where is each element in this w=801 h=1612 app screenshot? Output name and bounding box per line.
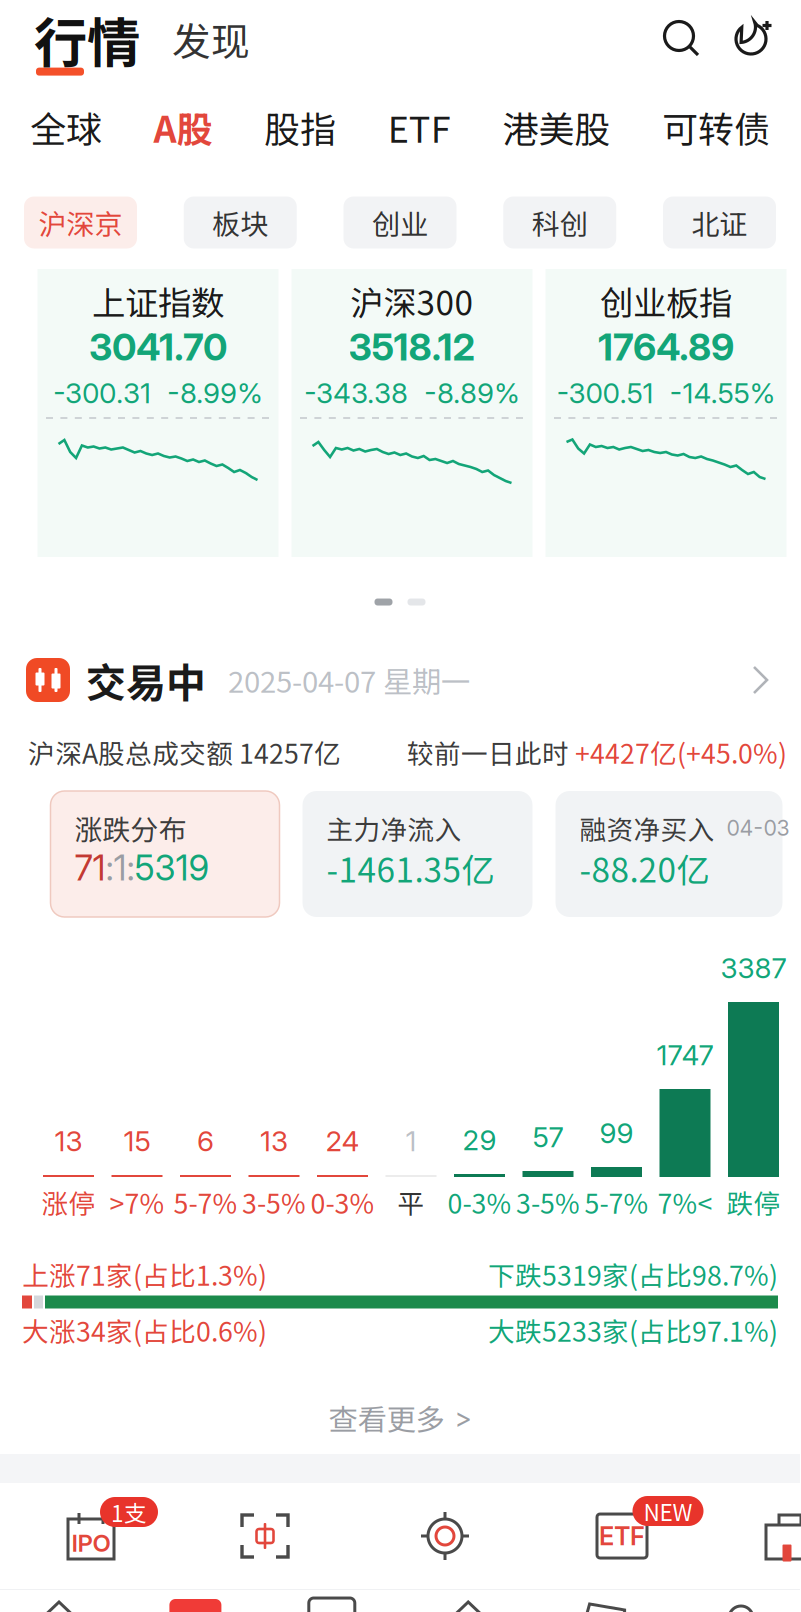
button[interactable]: ETF (562, 1497, 682, 1575)
staticText: -300.51 (556, 376, 653, 410)
staticText: -14.55% (669, 376, 775, 410)
staticText: 科创 (532, 202, 588, 243)
button[interactable]: 板块 (184, 196, 297, 248)
staticText: 创业板指 (600, 277, 732, 325)
staticText: >7% (109, 1183, 164, 1221)
button[interactable]: 首页 (14, 1598, 104, 1612)
button[interactable]: 我的 (696, 1598, 786, 1612)
staticText: 0-3% (447, 1183, 511, 1221)
staticText: 7%< (657, 1183, 712, 1221)
staticText: 行情 (34, 0, 140, 78)
staticText: 港美股 (502, 101, 610, 153)
staticText: 13 (260, 1124, 288, 1158)
staticText: > (454, 1402, 471, 1434)
button[interactable]: 全球 (30, 101, 102, 153)
staticText: 99 (599, 1116, 633, 1150)
button[interactable]: 交易 (287, 1598, 377, 1612)
staticText: -1461.35亿 (326, 844, 494, 892)
staticText: 2025-04-07 星期一 (228, 659, 470, 701)
button[interactable]: 交易中 (0, 647, 800, 713)
button[interactable]: 创业 (343, 196, 456, 248)
button[interactable]: 可转债 (662, 101, 770, 153)
staticText: 查看更多 (328, 1396, 444, 1439)
button[interactable]: 涨跌分布 (50, 791, 279, 917)
button[interactable]: A股 (154, 101, 213, 153)
button[interactable]: 沪深京 (24, 196, 137, 248)
staticText: : (105, 847, 113, 889)
staticText: 6 (197, 1124, 214, 1158)
staticText: 15 (123, 1124, 150, 1158)
staticText: 交易中 (86, 651, 206, 709)
staticText: 跌停 (726, 1183, 780, 1221)
staticText: 3518.12 (348, 324, 475, 370)
staticText: 1764.89 (598, 324, 734, 370)
staticText: 沪深A股总成交额 14257亿 (28, 733, 341, 771)
button[interactable]: 北证 (663, 196, 776, 248)
staticText: 北证 (691, 202, 747, 243)
staticText: 涨跌分布 (74, 808, 186, 848)
button[interactable]: ETF (388, 101, 451, 153)
button[interactable]: 资产 (560, 1598, 650, 1612)
button[interactable]: 主力净流入 (302, 791, 532, 917)
staticText: 1支 (111, 1496, 147, 1528)
staticText: 5-7% (173, 1183, 237, 1221)
button[interactable]: 行情 (150, 1598, 240, 1612)
staticText: NEW (643, 1495, 692, 1527)
staticText: 平 (397, 1183, 424, 1221)
staticText: 0-3% (310, 1183, 374, 1221)
staticText: 涨停 (41, 1183, 95, 1221)
button[interactable]: 工具箱 (730, 1497, 801, 1575)
staticText: 创业 (372, 202, 428, 243)
staticText: ETF (599, 1521, 645, 1551)
button[interactable]: 创业板指 (545, 269, 786, 557)
staticText: 3-5% (516, 1183, 580, 1221)
staticText: 上证指数 (92, 277, 224, 325)
staticText: 1 (405, 1124, 416, 1158)
staticText: : (126, 847, 134, 889)
staticText: 1 (113, 847, 126, 889)
staticText: 5319 (134, 847, 209, 889)
staticText: 下跌5319家(占比98.7%) (488, 1255, 778, 1293)
staticText: -8.89% (424, 376, 520, 410)
button[interactable]: 沪深300 (291, 269, 532, 557)
staticText: 沪深300 (350, 277, 473, 325)
staticText: 29 (462, 1123, 496, 1157)
staticText: 融资净买入 (579, 809, 714, 847)
staticText: 3387 (720, 951, 786, 985)
button[interactable]: 科创 (503, 196, 616, 248)
button[interactable]: 港美股 (502, 101, 610, 153)
button[interactable]: 盯盘 (385, 1497, 505, 1575)
staticText: ETF (388, 101, 451, 153)
button[interactable]: IPO 新股 (31, 1497, 151, 1575)
staticText: 1747 (656, 1038, 713, 1072)
staticText: 大跌5233家(占比97.1%) (488, 1311, 778, 1349)
staticText: 57 (532, 1120, 563, 1154)
staticText: 04-03 (726, 815, 789, 841)
button[interactable]: 扫一扫 (205, 1497, 325, 1575)
staticText: +4427亿(+45.0%) (575, 733, 787, 771)
staticText: 较前一日此时 (407, 733, 569, 771)
button[interactable]: 融资净买入 (555, 791, 782, 917)
staticText: -300.31 (53, 376, 151, 410)
staticText: 大涨34家(占比0.6%) (22, 1311, 267, 1349)
staticText: 3-5% (242, 1183, 306, 1221)
staticText: 13 (54, 1124, 82, 1158)
button[interactable]: 搜索 (662, 19, 702, 59)
staticText: 5-7% (584, 1183, 648, 1221)
staticText: 主力净流入 (326, 809, 461, 847)
staticText: 沪深京 (38, 202, 122, 243)
staticText: 股指 (264, 101, 336, 153)
button[interactable]: 上证指数 (37, 269, 278, 557)
staticText: 板块 (212, 202, 268, 243)
button[interactable]: 夜间模式 (732, 17, 776, 61)
staticText: 全球 (30, 101, 102, 153)
button[interactable]: 查看更多 (0, 1347, 800, 1439)
staticText: IPO (71, 1528, 110, 1557)
staticText: 上涨71家(占比1.3%) (22, 1255, 267, 1293)
button[interactable]: 社区 (423, 1598, 513, 1612)
staticText: -88.20亿 (579, 844, 709, 892)
staticText: A股 (154, 101, 213, 153)
staticText: 24 (325, 1124, 359, 1158)
button[interactable]: 股指 (264, 101, 336, 153)
staticText: 发现 (172, 11, 250, 67)
